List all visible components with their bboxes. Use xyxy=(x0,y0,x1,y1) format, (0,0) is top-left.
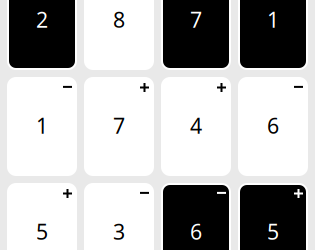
button[interactable]: Add 2 xyxy=(7,0,77,70)
button[interactable]: Add 5 xyxy=(7,183,77,250)
staticText: 2 xyxy=(36,5,48,34)
button[interactable]: Add 5 xyxy=(238,183,308,250)
staticText: 4 xyxy=(190,111,202,140)
button[interactable]: Subtract 3 xyxy=(84,183,154,250)
button[interactable]: Add 7 xyxy=(161,0,231,70)
staticText: 7 xyxy=(113,111,125,140)
button[interactable]: Subtract 1 xyxy=(7,77,77,176)
staticText: 1 xyxy=(267,5,279,34)
button[interactable]: Subtract 1 xyxy=(238,0,308,70)
button[interactable]: Subtract 8 xyxy=(84,0,154,70)
staticText: 6 xyxy=(267,111,279,140)
button[interactable]: Subtract 6 xyxy=(161,183,231,250)
staticText: 5 xyxy=(36,217,48,246)
staticText: 6 xyxy=(190,217,202,246)
staticText: 7 xyxy=(190,5,202,34)
staticText: 8 xyxy=(113,5,125,34)
staticText: 1 xyxy=(36,111,48,140)
button[interactable]: Add 7 xyxy=(84,77,154,176)
button[interactable]: Add 4 xyxy=(161,77,231,176)
staticText: 5 xyxy=(267,217,279,246)
button[interactable]: Subtract 6 xyxy=(238,77,308,176)
staticText: 3 xyxy=(113,217,125,246)
